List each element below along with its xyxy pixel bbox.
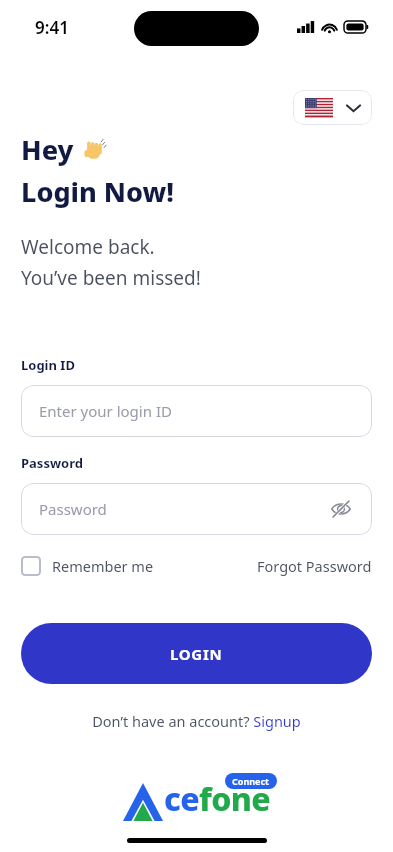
staticText: Welcome back. [21, 234, 155, 260]
staticText: Password [39, 499, 107, 519]
staticText: Forgot Password [257, 556, 372, 576]
staticText: Hey [21, 131, 74, 168]
staticText: Remember me [52, 556, 154, 576]
staticText: Login Now! [21, 173, 175, 210]
staticText: 9:41 [35, 16, 69, 39]
button[interactable]: Password [21, 483, 372, 535]
staticText: Don’t have an account? Signup [92, 711, 301, 731]
button[interactable]: Show password [328, 496, 354, 522]
staticText: Enter your login ID [39, 401, 172, 421]
button[interactable]: Don’t have an account? Signup [92, 711, 301, 731]
button[interactable]: Enter your login ID [21, 385, 372, 437]
staticText: Password [21, 454, 83, 472]
button[interactable]: LOGIN [21, 623, 372, 684]
staticText: LOGIN [170, 644, 223, 664]
staticText: Connect [232, 775, 270, 787]
button[interactable]: Forgot Password [257, 556, 372, 576]
staticText: cefone [164, 777, 271, 821]
staticText: You’ve been missed! [21, 265, 201, 291]
staticText: Login ID [21, 356, 75, 374]
button[interactable]: Select country [293, 90, 372, 125]
button[interactable]: Remember me [21, 556, 154, 576]
